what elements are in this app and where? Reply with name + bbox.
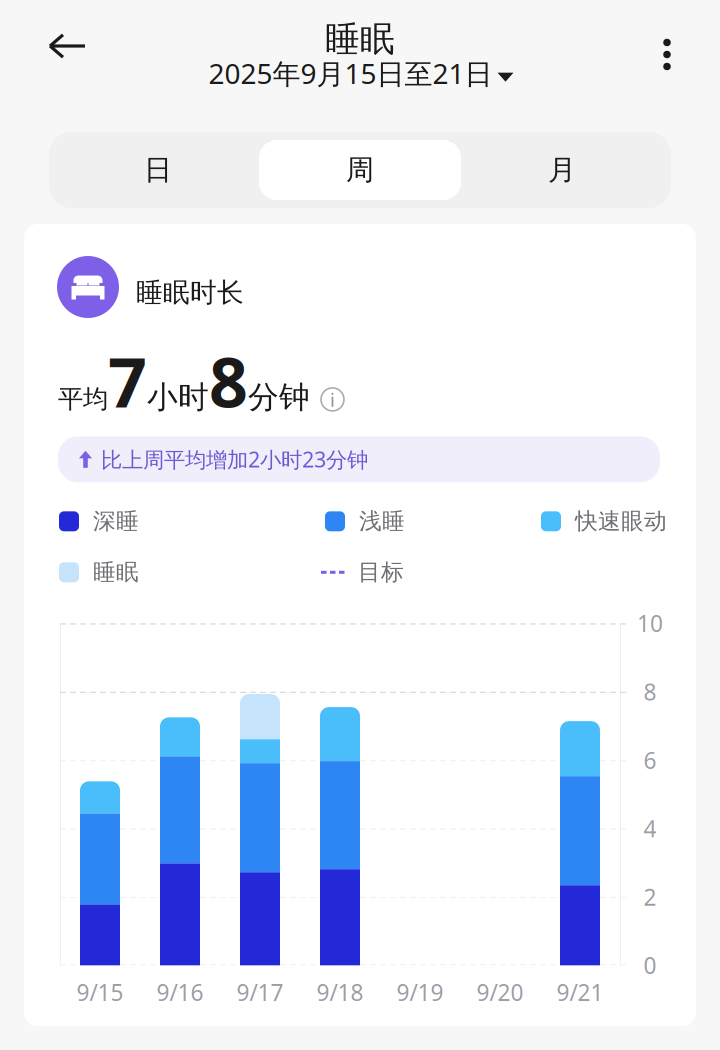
staticText: 睡眠时长 bbox=[136, 276, 244, 309]
staticText: 小时 bbox=[147, 378, 209, 416]
staticText: 月 bbox=[548, 153, 576, 187]
staticText: 9/18 bbox=[316, 977, 363, 1007]
staticText: 比上周平均增加2小时23分钟 bbox=[101, 445, 368, 473]
staticText: 周 bbox=[346, 153, 374, 187]
staticText: 9/17 bbox=[236, 977, 283, 1007]
staticText: 0 bbox=[643, 950, 656, 980]
button[interactable]: 周 bbox=[259, 140, 461, 200]
button[interactable]: More options bbox=[645, 18, 689, 99]
staticText: 9/15 bbox=[76, 977, 123, 1007]
staticText: 7 bbox=[108, 336, 147, 426]
staticText: 目标 bbox=[358, 558, 404, 586]
staticText: 9/21 bbox=[556, 977, 603, 1007]
staticText: 9/16 bbox=[156, 977, 203, 1007]
staticText: 8 bbox=[643, 677, 656, 707]
staticText: 4 bbox=[643, 813, 656, 844]
button[interactable]: 月 bbox=[461, 140, 663, 200]
staticText: 9/20 bbox=[476, 977, 523, 1007]
staticText: 日 bbox=[144, 153, 172, 187]
button[interactable]: Back bbox=[32, 18, 100, 100]
staticText: 快速眼动 bbox=[575, 507, 667, 535]
staticText: 浅睡 bbox=[359, 507, 405, 535]
staticText: 平均 bbox=[58, 383, 108, 415]
staticText: 2025年9月15日至21日 bbox=[208, 55, 492, 92]
staticText: 睡眠 bbox=[93, 558, 139, 586]
staticText: i bbox=[330, 387, 335, 412]
staticText: 9/19 bbox=[396, 977, 443, 1007]
staticText: 睡眠 bbox=[325, 18, 395, 61]
staticText: 深睡 bbox=[93, 507, 139, 535]
staticText: 2 bbox=[643, 882, 656, 912]
staticText: 分钟 bbox=[248, 378, 310, 416]
staticText: 8 bbox=[209, 336, 248, 426]
button[interactable]: 日 bbox=[57, 140, 259, 200]
staticText: 6 bbox=[643, 745, 656, 775]
staticText: 10 bbox=[637, 608, 663, 638]
